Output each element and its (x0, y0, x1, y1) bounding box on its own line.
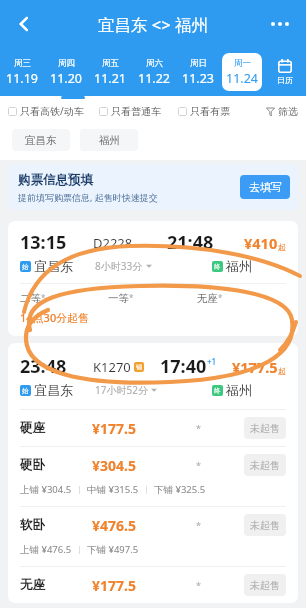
staticText: 购票信息预填 (18, 172, 93, 188)
staticText: 周日 (190, 58, 207, 69)
staticText: 日历 (277, 75, 293, 85)
button[interactable]: 只看高铁/动车 (8, 97, 99, 125)
staticText: 软卧 (20, 517, 45, 533)
staticText: 下铺 ¥497.5 (87, 543, 139, 556)
staticText: 上铺 ¥304.5 (20, 483, 72, 496)
staticText: +1 (207, 356, 217, 367)
staticText: 硬卧 (20, 457, 45, 473)
staticText: 起 (278, 366, 286, 376)
button[interactable]: 只看有票 (178, 97, 247, 125)
staticText: 只看普通车 (111, 105, 161, 118)
staticText: 铺 (136, 363, 142, 371)
staticText: 17小时52分 (95, 383, 148, 397)
staticText: * (41, 292, 46, 303)
button[interactable]: 只看普通车 (99, 97, 178, 125)
button[interactable]: 宜昌东 (12, 129, 70, 151)
staticText: 无座 (197, 292, 218, 305)
staticText: * (218, 292, 223, 303)
staticText: 未起售 (250, 459, 280, 472)
staticText: 14点30分起售 (20, 310, 90, 325)
button[interactable]: 筛选 (247, 97, 298, 125)
button[interactable]: 硬座 (8, 410, 298, 446)
staticText: 宜昌东 (25, 134, 57, 147)
staticText: 周六 (146, 58, 163, 69)
staticText: 17:40 (160, 354, 207, 379)
staticText: 筛选 (278, 105, 298, 118)
button[interactable]: Back (4, 4, 44, 44)
staticText: ¥410 (244, 233, 278, 253)
staticText: D2228 (93, 234, 133, 252)
staticText: 二等 (20, 292, 41, 305)
staticText: 宜昌东 <> 福州 (98, 13, 208, 36)
staticText: 11.21 (94, 70, 126, 87)
button[interactable]: 周四 (46, 53, 86, 91)
button[interactable]: More options (260, 4, 300, 44)
staticText: 中铺 ¥315.5 (87, 483, 139, 496)
staticText: 福州 (226, 382, 252, 398)
staticText: 上铺 ¥476.5 (20, 543, 72, 556)
staticText: * (196, 422, 201, 434)
button[interactable]: 周三 (2, 53, 42, 91)
staticText: 一等 (108, 292, 129, 305)
staticText: K1270 (93, 358, 131, 376)
staticText: 硬座 (20, 420, 45, 436)
button[interactable]: Calendar (264, 48, 306, 96)
staticText: 周四 (58, 58, 75, 69)
button[interactable]: 软卧 (8, 507, 298, 543)
button[interactable]: 硬卧 (8, 447, 298, 483)
staticText: 只看高铁/动车 (20, 104, 84, 118)
staticText: 11.19 (6, 70, 38, 87)
staticText: 11.20 (50, 70, 82, 87)
staticText: 提前填写购票信息, 起售时快速提交 (18, 191, 158, 203)
staticText: 福州 (99, 134, 120, 147)
button[interactable]: 13:15 (8, 221, 298, 336)
staticText: 13:15 (20, 230, 67, 255)
staticText: 周一 (234, 58, 251, 69)
staticText: 始 (22, 387, 29, 395)
staticText: ¥177.5 (232, 357, 278, 377)
staticText: 只看有票 (190, 105, 230, 118)
button[interactable]: 周日 (178, 53, 218, 91)
staticText: 21:48 (167, 230, 214, 255)
staticText: 11.24 (226, 70, 258, 87)
staticText: ¥177.5 (92, 419, 136, 438)
staticText: 始 (22, 263, 29, 271)
staticText: * (196, 459, 201, 471)
staticText: 终 (214, 387, 221, 395)
staticText: 8小时33分 (95, 259, 143, 273)
staticText: 11.22 (138, 70, 170, 87)
staticText: 未起售 (250, 519, 280, 532)
staticText: 去填写 (249, 180, 282, 194)
staticText: 未起售 (250, 579, 280, 592)
button[interactable]: 周五 (90, 53, 130, 91)
button[interactable]: 购票信息预填 (8, 164, 298, 210)
button[interactable]: 23:48 (8, 343, 298, 603)
button[interactable]: 无座 (8, 567, 298, 603)
staticText: ¥177.5 (92, 576, 136, 595)
staticText: 23:48 (20, 354, 67, 379)
staticText: 周五 (102, 58, 119, 69)
staticText: 下铺 ¥325.5 (154, 483, 206, 496)
staticText: 宜昌东 (34, 382, 73, 398)
staticText: 11.23 (182, 70, 214, 87)
button[interactable]: 福州 (80, 129, 138, 151)
staticText: 无座 (20, 577, 45, 593)
staticText: * (129, 292, 134, 303)
staticText: * (196, 519, 201, 531)
staticText: 起 (278, 242, 286, 252)
button[interactable]: 去填写 (240, 175, 290, 199)
staticText: ¥304.5 (92, 456, 136, 475)
staticText: ¥476.5 (92, 516, 136, 535)
staticText: 周三 (14, 58, 31, 69)
staticText: 宜昌东 (34, 258, 73, 274)
staticText: * (196, 579, 201, 591)
staticText: 未起售 (250, 422, 280, 435)
staticText: 福州 (226, 258, 252, 274)
button[interactable]: 周一 (222, 53, 262, 91)
button[interactable]: 周六 (134, 53, 174, 91)
staticText: 终 (214, 263, 221, 271)
